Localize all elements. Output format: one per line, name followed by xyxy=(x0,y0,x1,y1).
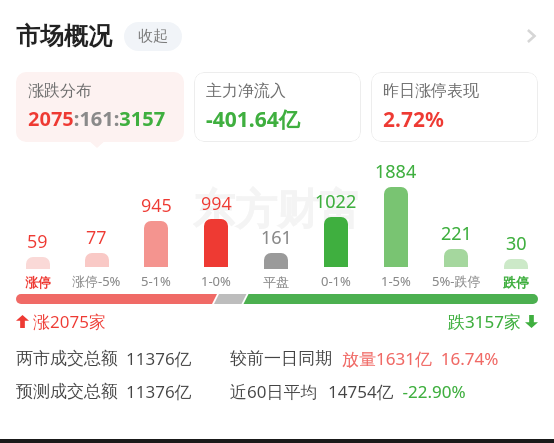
button[interactable]: 昨日涨停表现 xyxy=(371,72,538,142)
staticText: 2.72% xyxy=(383,105,444,134)
button[interactable]: More xyxy=(508,13,554,59)
staticText: 两市成交总额 xyxy=(16,348,118,369)
staticText: 涨跌分布 xyxy=(28,81,92,101)
staticText: 945 xyxy=(141,193,172,218)
staticText: 东方财富 xyxy=(193,184,361,237)
button[interactable]: 主力净流入 xyxy=(194,72,361,142)
staticText: 1884 xyxy=(375,159,417,184)
staticText: 14754亿 -22.90% xyxy=(328,380,466,403)
staticText: 昨日涨停表现 xyxy=(383,81,479,101)
staticText: 1-0% xyxy=(201,272,231,290)
staticText: 跌3157家 xyxy=(448,310,521,333)
button[interactable]: 收起 xyxy=(124,22,182,51)
staticText: 11376亿 xyxy=(126,347,192,370)
staticText: 0-1% xyxy=(321,272,351,290)
staticText: 1022 xyxy=(315,189,357,214)
staticText: 预测成交总额 xyxy=(16,381,118,402)
staticText: 主力净流入 xyxy=(206,81,286,101)
staticText: 较前一日同期 xyxy=(230,348,332,369)
staticText: 涨停 xyxy=(25,274,51,290)
staticText: 11376亿 xyxy=(126,380,192,403)
staticText: 市场概况 xyxy=(16,21,112,51)
staticText: 2075:161:3157 xyxy=(28,105,166,132)
staticText: 平盘 xyxy=(263,274,289,290)
staticText: 994 xyxy=(201,191,232,216)
staticText: 放量1631亿 16.74% xyxy=(342,347,499,370)
staticText: 30 xyxy=(506,231,527,256)
staticText: 涨停-5% xyxy=(72,272,121,290)
staticText: 1-5% xyxy=(381,272,411,290)
staticText: 5-1% xyxy=(141,272,171,290)
staticText: 221 xyxy=(441,221,472,246)
staticText: 近60日平均 xyxy=(230,380,318,403)
staticText: 5%-跌停 xyxy=(432,272,481,290)
staticText: -401.64亿 xyxy=(206,105,300,134)
button[interactable]: 涨跌分布 xyxy=(16,72,184,142)
staticText: 收起 xyxy=(138,27,168,46)
staticText: 59 xyxy=(27,229,48,254)
staticText: 跌停 xyxy=(503,274,529,290)
staticText: 161 xyxy=(261,225,292,250)
staticText: 77 xyxy=(86,225,107,250)
staticText: 涨2075家 xyxy=(33,310,106,333)
